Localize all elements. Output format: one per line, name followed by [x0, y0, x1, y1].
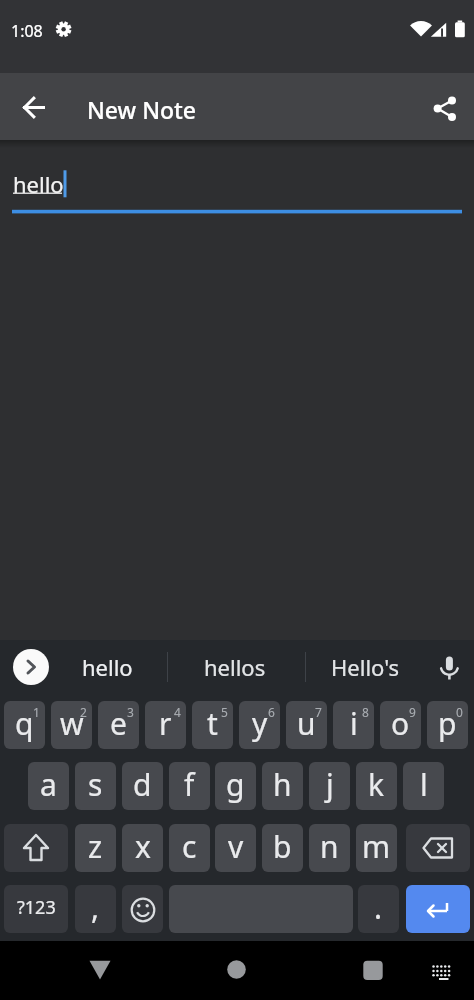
staticText: x [135, 826, 151, 867]
button[interactable]: , [75, 885, 116, 933]
button[interactable] [406, 885, 470, 933]
button[interactable]: r [145, 701, 186, 749]
button[interactable] [10, 83, 58, 131]
staticText: 3 [127, 704, 134, 720]
staticText: n [320, 826, 339, 867]
staticText: hellos [204, 652, 266, 682]
button[interactable]: w [51, 701, 92, 749]
staticText: 8 [362, 704, 369, 720]
staticText: hello [13, 169, 64, 199]
staticText: 4 [174, 704, 181, 720]
button[interactable]: p [427, 701, 468, 749]
staticText: 1 [33, 704, 40, 720]
button[interactable]: l [403, 762, 444, 810]
staticText: . [374, 887, 383, 928]
button[interactable] [212, 946, 260, 994]
staticText: l [420, 764, 428, 805]
staticText: 0 [456, 704, 463, 720]
staticText: 7 [315, 704, 322, 720]
staticText: f [184, 764, 195, 805]
staticText: i [350, 703, 358, 744]
button[interactable]: s [75, 762, 116, 810]
button[interactable]: z [75, 824, 116, 872]
staticText: 5 [221, 704, 228, 720]
staticText: New Note [87, 94, 197, 125]
button[interactable]: h [262, 762, 303, 810]
button[interactable]: j [309, 762, 350, 810]
button[interactable]: a [28, 762, 69, 810]
staticText: s [88, 764, 103, 805]
button[interactable]: n [309, 824, 350, 872]
button[interactable] [430, 649, 466, 685]
staticText: t [207, 703, 218, 744]
staticText: j [326, 764, 334, 805]
staticText: 6 [268, 704, 275, 720]
staticText: c [182, 826, 197, 867]
staticText: e [110, 703, 127, 744]
staticText: g [226, 764, 245, 805]
button[interactable]: o [380, 701, 421, 749]
staticText: q [15, 703, 34, 744]
staticText: hello [82, 652, 133, 682]
button[interactable]: f [169, 762, 210, 810]
staticText: Hello's [331, 652, 399, 682]
button[interactable]: k [356, 762, 397, 810]
staticText: a [40, 764, 57, 805]
button[interactable] [0, 160, 474, 218]
button[interactable] [421, 84, 469, 132]
button[interactable]: e [98, 701, 139, 749]
staticText: r [159, 703, 172, 744]
staticText: h [273, 764, 292, 805]
staticText: ?123 [17, 895, 56, 920]
button[interactable] [4, 824, 68, 872]
button[interactable]: . [358, 885, 399, 933]
staticText: d [133, 764, 152, 805]
staticText: m [362, 826, 391, 867]
staticText: 1:08 [11, 20, 43, 42]
button[interactable]: y [239, 701, 280, 749]
button[interactable]: x [122, 824, 163, 872]
button[interactable]: i [333, 701, 374, 749]
button[interactable] [13, 649, 49, 685]
staticText: u [297, 703, 316, 744]
button[interactable]: t [192, 701, 233, 749]
button[interactable]: c [169, 824, 210, 872]
button[interactable]: u [286, 701, 327, 749]
staticText: z [88, 826, 103, 867]
button[interactable]: b [262, 824, 303, 872]
button[interactable] [418, 946, 466, 994]
button[interactable]: hellos [175, 649, 295, 685]
button[interactable]: Hello's [305, 649, 425, 685]
button[interactable] [406, 824, 470, 872]
button[interactable]: d [122, 762, 163, 810]
button[interactable]: m [356, 824, 397, 872]
button[interactable]: hello [47, 649, 167, 685]
button[interactable] [76, 946, 124, 994]
staticText: y [252, 703, 268, 744]
button[interactable]: q [4, 701, 45, 749]
button[interactable]: g [215, 762, 256, 810]
staticText: v [228, 826, 244, 867]
button[interactable]: v [215, 824, 256, 872]
button[interactable] [349, 946, 397, 994]
button[interactable] [122, 885, 163, 933]
staticText: p [438, 703, 457, 744]
staticText: b [273, 826, 292, 867]
staticText: k [368, 764, 385, 805]
staticText: o [391, 703, 410, 744]
staticText: 2 [80, 704, 87, 720]
staticText: 9 [409, 704, 416, 720]
staticText: , [91, 887, 100, 928]
staticText: w [60, 703, 84, 744]
button[interactable]: ?123 [4, 885, 68, 933]
